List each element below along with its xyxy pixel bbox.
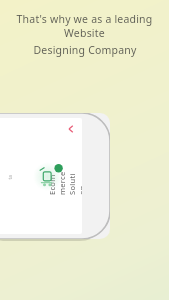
button[interactable]: Back [0, 113, 110, 239]
staticText: tablet. [6, 172, 12, 179]
staticText: Ecommerce Solution [47, 169, 82, 195]
staticText: Designing Company [33, 43, 137, 57]
button[interactable]: Back [66, 124, 76, 134]
staticText: That's why we as a leading Website [10, 12, 159, 40]
